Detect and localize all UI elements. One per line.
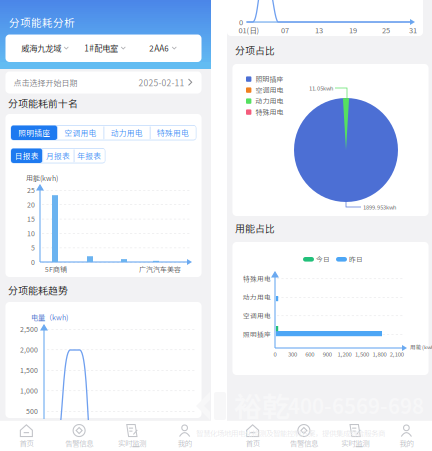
staticText: 300 [288, 350, 297, 358]
staticText: 15 [27, 214, 35, 224]
staticText: 分项能耗趋势 [8, 283, 68, 297]
staticText: 2AA6 [149, 42, 169, 54]
staticText: 动力用电 [111, 127, 143, 138]
staticText: 电量（kwh) [31, 312, 68, 322]
staticText: 1,500 [355, 350, 369, 358]
button[interactable]: 实时监测 [329, 420, 381, 451]
staticText: 25 [27, 185, 35, 195]
staticText: 首页 [246, 437, 260, 448]
staticText: 智慧化场地用电化检测及智能控制方案，提供集成综合服务商 [196, 428, 385, 438]
staticText: 19 [349, 25, 357, 35]
button[interactable]: 照明插座 [11, 125, 57, 140]
button[interactable]: 日报表 [11, 148, 42, 163]
staticText: 01(日) [238, 25, 259, 35]
button[interactable]: 我的 [158, 420, 211, 451]
staticText: 1899.953kwh [363, 203, 396, 211]
staticText: 5F商铺 [45, 264, 67, 274]
staticText: 1,500 [20, 365, 38, 375]
staticText: 广汽汽车美容 [139, 264, 181, 274]
staticText: 20 [27, 199, 35, 209]
button[interactable]: 告警信息 [278, 420, 329, 451]
staticText: 威海九龙域 [21, 42, 61, 54]
staticText: 空调用电 [243, 311, 271, 320]
staticText: 照明插座 [18, 127, 50, 138]
staticText: 500 [26, 406, 38, 416]
staticText: 空调用电 [255, 85, 283, 95]
staticText: 特殊用电 [157, 127, 189, 138]
button[interactable]: 特殊用电 [150, 125, 196, 140]
staticText: 900 [323, 350, 332, 358]
button[interactable]: 空调用电 [57, 125, 103, 140]
button[interactable]: 2AA6 [145, 40, 181, 56]
button[interactable]: 实时监测 [105, 420, 158, 451]
staticText: 实时监测 [118, 437, 146, 448]
staticText: 动力用电 [243, 292, 271, 302]
staticText: 日报表 [15, 150, 39, 161]
staticText: 2,100 [390, 350, 404, 358]
staticText: 今日 [316, 254, 330, 264]
button[interactable]: 首页 [0, 420, 53, 451]
staticText: 年报表 [77, 150, 101, 161]
staticText: 31 [409, 25, 417, 35]
staticText: 照明插座 [243, 329, 271, 339]
staticText: 1,800 [372, 350, 386, 358]
button[interactable]: 我的 [381, 420, 432, 451]
staticText: 600 [305, 350, 314, 358]
staticText: 用能(kwh) [26, 173, 58, 183]
staticText: 点击选择开始日期 [13, 77, 77, 88]
staticText: 告警信息 [65, 437, 93, 448]
button[interactable]: 威海九龙域 [17, 40, 73, 56]
staticText: 月报表 [46, 150, 70, 161]
staticText: 分项占比 [235, 43, 275, 57]
staticText: 特殊用电 [243, 274, 271, 283]
staticText: 0 [31, 257, 35, 267]
staticText: 10 [27, 228, 35, 238]
staticText: 2025-02-11 [138, 76, 184, 89]
staticText: 5 [31, 243, 35, 253]
staticText: 11.05kwh [309, 84, 333, 92]
button[interactable]: 年报表 [74, 148, 105, 163]
staticText: 0 [239, 17, 243, 27]
staticText: 用能占比 [235, 221, 275, 235]
button[interactable]: 动力用电 [103, 125, 150, 140]
staticText: 分项能耗前十名 [8, 96, 78, 110]
staticText: 告警信息 [290, 437, 318, 448]
staticText: 1#配电室 [84, 42, 118, 54]
staticText: 昨日 [349, 254, 363, 264]
staticText: 2,500 [20, 324, 38, 334]
button[interactable]: 点击选择开始日期 [5, 71, 201, 93]
button[interactable]: 告警信息 [53, 420, 106, 451]
staticText: 照明插座 [255, 74, 283, 84]
staticText: 1,000 [20, 385, 38, 395]
staticText: 分项能耗分析 [9, 14, 75, 30]
staticText: 特殊用电 [255, 107, 283, 117]
staticText: 2,000 [20, 344, 38, 354]
staticText: 1,200 [338, 350, 352, 358]
staticText: 裕乾 [234, 385, 290, 425]
staticText: 实时监测 [341, 437, 369, 448]
button[interactable]: 首页 [227, 420, 278, 451]
staticText: 空调用电 [64, 127, 96, 138]
staticText: 13 [315, 25, 323, 35]
staticText: 用能(kwh) [410, 343, 432, 351]
button[interactable]: 月报表 [42, 148, 74, 163]
staticText: 我的 [399, 437, 413, 448]
staticText: 07 [281, 25, 289, 35]
staticText: 动力用电 [255, 96, 283, 106]
staticText: 我的 [178, 437, 192, 448]
staticText: 0 [273, 350, 276, 358]
button[interactable]: 1#配电室 [80, 40, 130, 56]
staticText: 首页 [19, 437, 33, 448]
staticText: 25 [382, 25, 390, 35]
